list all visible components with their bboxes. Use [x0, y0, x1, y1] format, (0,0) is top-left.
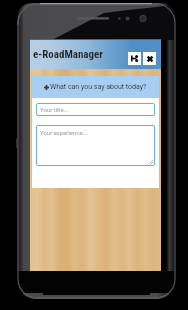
button[interactable]: What can you say about today? [32, 76, 159, 98]
button[interactable]: Your title... [36, 103, 155, 116]
button[interactable]: Your experience... [36, 125, 155, 166]
staticText: What can you say about today? [50, 83, 147, 91]
staticText: e-RoadManager [33, 48, 103, 61]
button[interactable]: Restore [128, 52, 141, 65]
button[interactable]: Close [143, 52, 156, 65]
staticText: Your title... [40, 106, 69, 113]
staticText: Your experience... [40, 129, 88, 136]
